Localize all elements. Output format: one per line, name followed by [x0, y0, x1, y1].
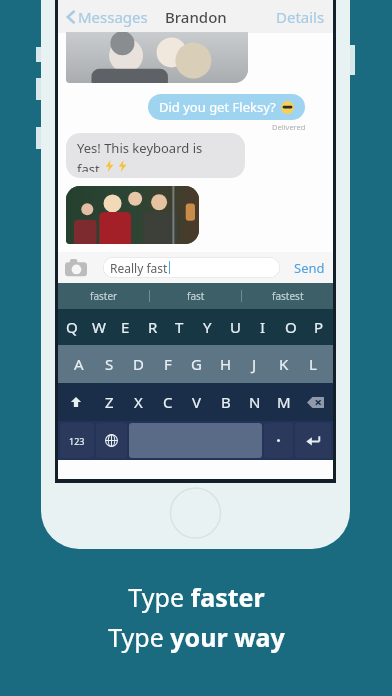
button[interactable]: M: [269, 383, 298, 421]
staticText: K: [279, 354, 289, 374]
button[interactable]: P: [305, 309, 333, 345]
staticText: Brandon: [165, 7, 227, 27]
button[interactable]: K: [269, 345, 298, 383]
button[interactable]: Camera: [65, 259, 87, 277]
staticText: 123: [69, 435, 85, 447]
button[interactable]: S: [94, 345, 124, 383]
staticText: B: [221, 392, 231, 412]
staticText: fast: [187, 289, 205, 303]
staticText: Messages: [78, 7, 148, 27]
staticText: Type faster: [128, 580, 265, 614]
button[interactable]: R: [139, 309, 166, 345]
button[interactable]: A: [64, 345, 94, 383]
staticText: R: [148, 317, 158, 337]
button[interactable]: [264, 423, 293, 458]
button[interactable]: W: [85, 309, 112, 345]
staticText: S: [105, 354, 114, 374]
staticText: M: [277, 392, 291, 412]
button[interactable]: Shift: [58, 383, 94, 421]
staticText: Y: [203, 317, 212, 337]
staticText: I: [260, 317, 266, 337]
button[interactable]: B: [211, 383, 240, 421]
staticText: C: [163, 392, 173, 412]
button[interactable]: [66, 186, 199, 244]
staticText: V: [192, 392, 202, 412]
staticText: Type your way: [108, 620, 285, 654]
button[interactable]: 123: [60, 423, 94, 458]
staticText: N: [249, 392, 261, 412]
button[interactable]: F: [153, 345, 182, 383]
button[interactable]: L: [298, 345, 327, 383]
button[interactable]: O: [277, 309, 305, 345]
button[interactable]: Did you get Fleksy?: [148, 94, 305, 120]
button[interactable]: H: [211, 345, 240, 383]
staticText: J: [252, 354, 257, 374]
staticText: T: [175, 317, 184, 337]
staticText: Q: [66, 317, 78, 337]
button[interactable]: C: [153, 383, 182, 421]
staticText: D: [133, 354, 144, 374]
button[interactable]: N: [240, 383, 269, 421]
button[interactable]: U: [221, 309, 249, 345]
button[interactable]: Send: [286, 254, 333, 282]
button[interactable]: faster: [58, 283, 149, 309]
staticText: fastest: [272, 289, 304, 303]
button[interactable]: Q: [58, 309, 85, 345]
staticText: fast: [77, 160, 100, 172]
button[interactable]: Return: [295, 423, 331, 458]
button[interactable]: Z: [94, 383, 124, 421]
staticText: L: [309, 354, 317, 374]
button[interactable]: V: [182, 383, 211, 421]
staticText: Delivered: [272, 122, 306, 132]
button[interactable]: Yes! This keyboard is: [66, 133, 245, 178]
staticText: G: [191, 354, 202, 374]
button[interactable]: Really fast: [103, 257, 280, 278]
button[interactable]: I: [249, 309, 277, 345]
staticText: H: [220, 354, 232, 374]
staticText: A: [74, 354, 84, 374]
staticText: W: [92, 317, 106, 337]
staticText: P: [314, 317, 324, 337]
staticText: Really fast: [110, 260, 168, 276]
button[interactable]: Y: [193, 309, 221, 345]
button[interactable]: D: [124, 345, 153, 383]
staticText: Did you get Fleksy?: [159, 98, 276, 116]
staticText: F: [164, 354, 172, 374]
staticText: X: [134, 392, 143, 412]
button[interactable]: G: [182, 345, 211, 383]
button[interactable]: fastest: [242, 283, 333, 309]
staticText: Z: [105, 392, 114, 412]
button[interactable]: T: [166, 309, 193, 345]
button[interactable]: E: [112, 309, 139, 345]
staticText: faster: [90, 289, 118, 303]
button[interactable]: Backspace: [298, 383, 333, 421]
button[interactable]: J: [240, 345, 269, 383]
staticText: U: [230, 317, 241, 337]
button[interactable]: Details: [268, 1, 333, 33]
button[interactable]: Switch language: [96, 423, 127, 458]
staticText: O: [285, 317, 297, 337]
button[interactable]: Messages: [64, 3, 150, 31]
staticText: E: [121, 317, 130, 337]
button[interactable]: X: [124, 383, 153, 421]
staticText: Yes! This keyboard is: [77, 139, 203, 157]
button[interactable]: fast: [150, 283, 241, 309]
